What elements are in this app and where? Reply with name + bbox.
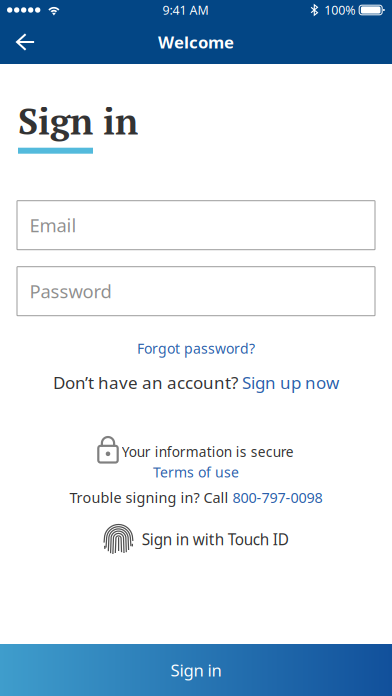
staticText: Don’t have an account? <box>53 371 242 394</box>
staticText: Trouble signing in? Call <box>69 488 232 507</box>
staticText: Terms of use <box>153 462 239 482</box>
button[interactable]: 800-797-0098 <box>232 488 322 507</box>
button[interactable]: Forgot password? <box>127 333 265 364</box>
staticText: Welcome <box>158 31 234 53</box>
button[interactable]: Back <box>0 20 47 64</box>
staticText: 100% <box>324 2 355 18</box>
staticText: Sign in <box>170 659 221 681</box>
button[interactable]: Sign in <box>0 644 392 696</box>
staticText: Sign up now <box>242 371 339 394</box>
staticText: Email <box>29 213 76 238</box>
staticText: 9:41 AM <box>162 2 208 18</box>
staticText: Sign in <box>18 97 138 145</box>
staticText: Sign in with Touch ID <box>142 529 289 550</box>
staticText: Password <box>29 279 111 304</box>
staticText: Your information is secure <box>122 442 294 461</box>
button[interactable]: Sign up now <box>242 371 339 394</box>
button[interactable]: Terms of use <box>143 459 249 485</box>
staticText: Forgot password? <box>137 339 255 358</box>
staticText: 800-797-0098 <box>232 488 322 507</box>
button[interactable]: Sign in with Touch ID <box>103 523 289 555</box>
